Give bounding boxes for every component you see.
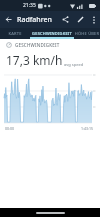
button[interactable]: HÖHE ÜBER DEM [74, 28, 100, 39]
staticText: 00:00 [5, 126, 14, 131]
button[interactable]: Teilen [58, 11, 73, 28]
staticText: avg speed [64, 62, 84, 67]
button[interactable]: GESCHWINDIGKEIT [30, 28, 74, 39]
button[interactable]: Bearbeiten [73, 11, 88, 28]
staticText: GESCHWINDIGKEIT [32, 31, 72, 36]
staticText: 1:43:15 [81, 126, 93, 131]
staticText: 17,3 km/h [6, 52, 63, 68]
button[interactable]: Zurück [0, 11, 16, 28]
button[interactable]: Weitere Optionen [88, 11, 100, 28]
staticText: HÖHE ÜBER DEM [74, 31, 100, 36]
staticText: Radfahren [17, 15, 52, 25]
staticText: GESCHWINDIGKEIT [15, 42, 60, 48]
button[interactable]: KARTE [0, 28, 30, 39]
staticText: 21:35 [23, 2, 36, 9]
staticText: KARTE [8, 31, 22, 36]
